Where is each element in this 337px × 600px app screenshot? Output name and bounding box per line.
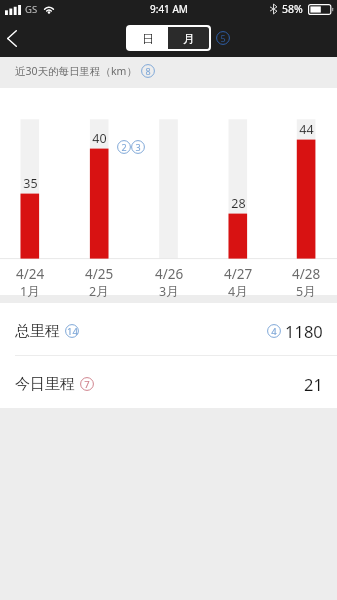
button[interactable]: 今日里程	[0, 361, 337, 407]
staticText: 5	[220, 32, 226, 44]
staticText: 4/24	[16, 265, 45, 283]
staticText: 44	[299, 121, 314, 138]
button[interactable]: Back	[0, 20, 34, 56]
button[interactable]: 日	[128, 27, 168, 49]
staticText: 21	[304, 373, 323, 395]
staticText: GS	[25, 3, 38, 16]
staticText: 3	[135, 141, 141, 153]
staticText: 1月	[20, 283, 40, 300]
staticText: 今日里程	[15, 375, 75, 394]
staticText: 4	[271, 325, 277, 338]
staticText: 近30天的每日里程（km）	[15, 64, 137, 78]
staticText: 4/27	[224, 265, 253, 283]
staticText: 2月	[89, 283, 109, 300]
staticText: 3月	[159, 283, 179, 300]
staticText: 1180	[285, 320, 323, 342]
staticText: 4/28	[292, 265, 321, 283]
button[interactable]: 月	[168, 27, 209, 49]
staticText: 58%	[282, 2, 303, 16]
button[interactable]: 总里程	[0, 308, 337, 354]
staticText: 4/26	[155, 265, 184, 283]
staticText: 4月	[228, 283, 248, 300]
staticText: 9:41 AM	[150, 2, 188, 16]
staticText: 40	[92, 130, 107, 147]
staticText: 35	[23, 175, 38, 192]
staticText: 月	[183, 31, 195, 46]
staticText: 14	[67, 325, 78, 338]
staticText: 日	[142, 31, 154, 46]
staticText: 7	[84, 378, 90, 391]
staticText: 4/25	[85, 265, 114, 283]
staticText: 2	[121, 141, 127, 153]
staticText: 总里程	[15, 322, 60, 341]
staticText: 8	[145, 65, 151, 77]
staticText: 28	[231, 195, 246, 212]
staticText: 5月	[296, 283, 316, 300]
